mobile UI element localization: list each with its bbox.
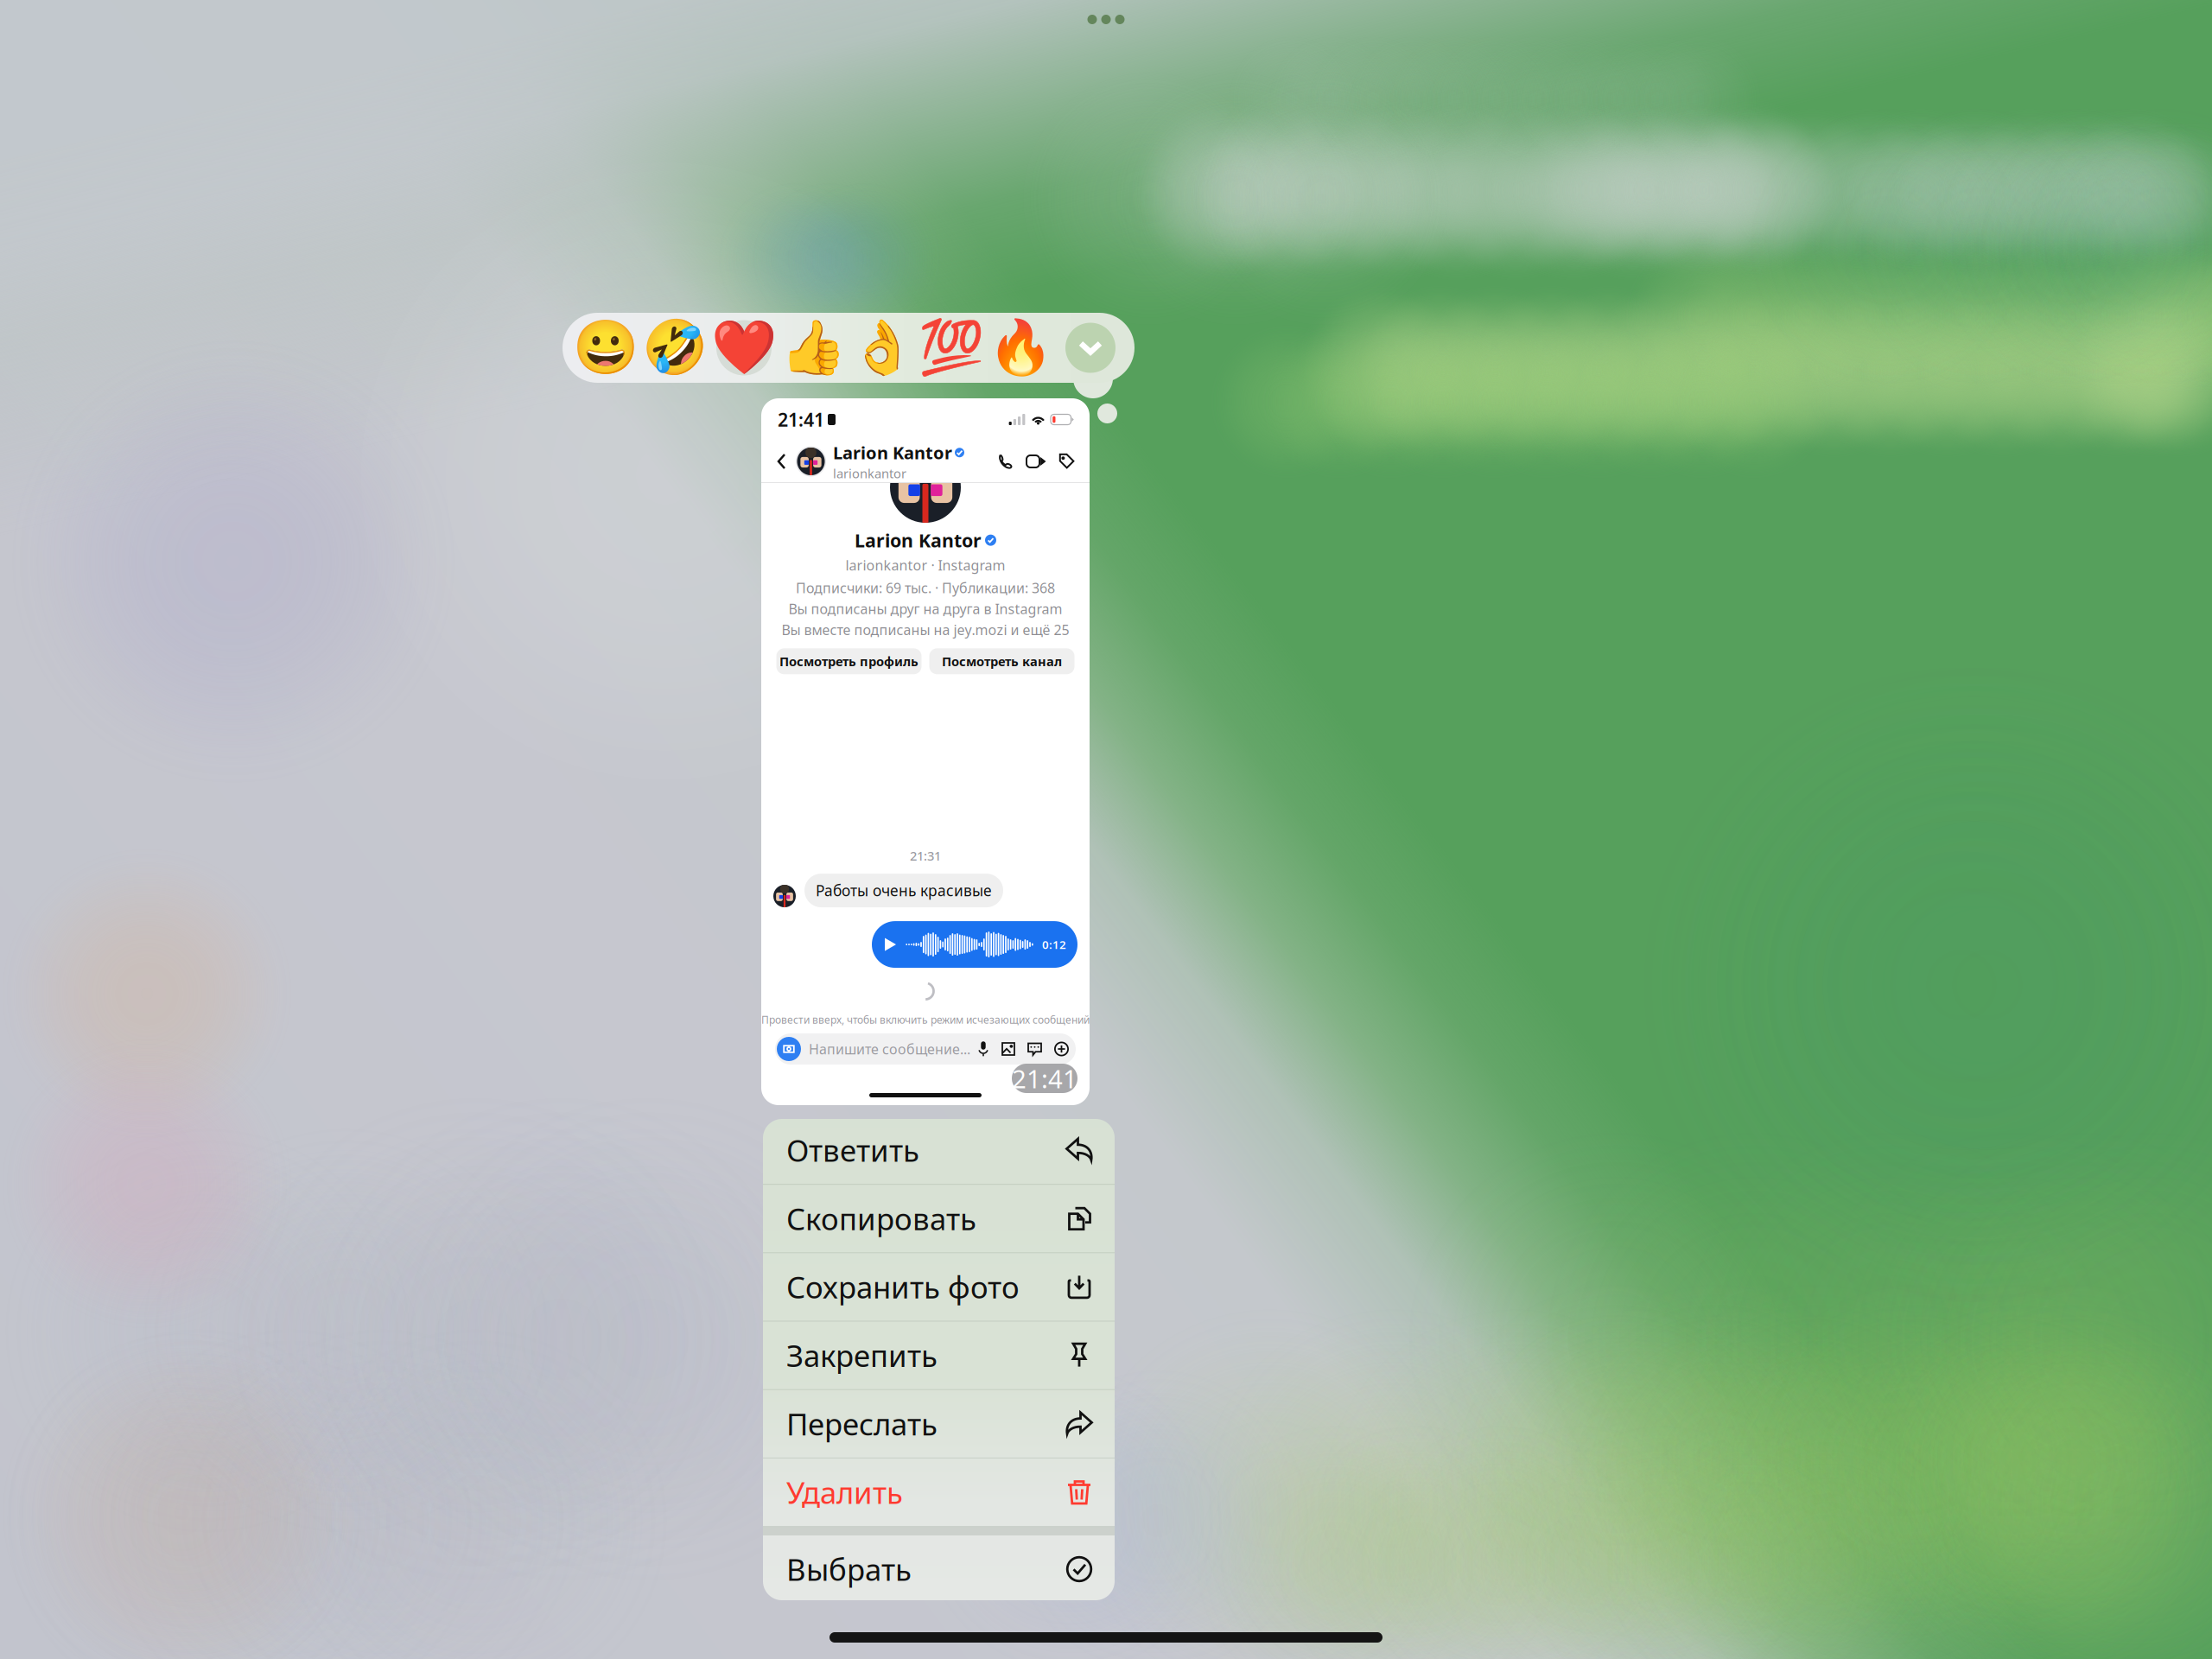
staticText: larionkantor	[833, 465, 906, 482]
button[interactable]: Переслать	[763, 1390, 1115, 1458]
staticText: Сохранить фото	[786, 1267, 1020, 1307]
button[interactable]: Tag	[1055, 449, 1079, 474]
staticText: Выбрать	[786, 1549, 912, 1589]
button[interactable]: Video call	[1023, 449, 1050, 474]
staticText: Закрепить	[786, 1335, 938, 1375]
staticText: Посмотреть канал	[942, 653, 1062, 670]
button[interactable]: 👌	[848, 313, 917, 383]
staticText: Посмотреть профиль	[779, 653, 918, 670]
staticText: Ответить	[786, 1130, 919, 1170]
staticText: Удалить	[786, 1472, 903, 1512]
staticText: Larion Kantor	[855, 528, 982, 552]
staticText: 0:12	[1042, 937, 1066, 952]
staticText: Работы очень красивые	[816, 880, 992, 900]
staticText: Вы подписаны друг на друга в Instagram	[788, 599, 1062, 618]
button[interactable]: Закрепить	[763, 1322, 1115, 1389]
staticText: Larion Kantor	[833, 441, 952, 464]
staticText: Подписчики: 69 тыс. · Публикации: 368	[796, 579, 1055, 597]
staticText: Скопировать	[786, 1199, 976, 1238]
staticText: 😀	[573, 318, 639, 378]
staticText: 21:31	[910, 847, 941, 864]
button[interactable]: 😀	[571, 313, 640, 383]
button[interactable]: 💯	[917, 313, 986, 383]
button[interactable]: More reactions	[1055, 313, 1126, 383]
button[interactable]: 🤣	[640, 313, 709, 383]
button[interactable]: ❤️	[709, 313, 779, 383]
button[interactable]: Скопировать	[763, 1185, 1115, 1252]
button[interactable]: Посмотреть канал	[929, 648, 1074, 674]
button[interactable]: 👍	[779, 313, 848, 383]
button[interactable]: Сохранить фото	[763, 1253, 1115, 1321]
staticText: 💯	[918, 318, 984, 378]
button[interactable]: Посмотреть профиль	[776, 648, 922, 674]
button[interactable]: Audio call	[994, 449, 1018, 474]
staticText: 🔥	[988, 318, 1053, 378]
button[interactable]: 🔥	[986, 313, 1055, 383]
staticText: 21:41	[1012, 1062, 1077, 1095]
staticText: 🤣	[642, 318, 708, 378]
staticText: Напишите сообщение...	[809, 1040, 970, 1058]
button[interactable]: Ответить	[763, 1116, 1115, 1184]
staticText: larionkantor · Instagram	[845, 556, 1005, 574]
staticText: Переслать	[786, 1404, 938, 1444]
staticText: ❤️	[711, 318, 777, 378]
button[interactable]: Back	[772, 448, 791, 475]
staticText: Провести вверх, чтобы включить режим исч…	[761, 1013, 1090, 1027]
staticText: 21:41	[778, 407, 824, 432]
button[interactable]: Удалить	[763, 1459, 1115, 1526]
staticText: 👌	[849, 318, 915, 378]
button[interactable]: Larion Kantor	[796, 441, 964, 482]
button[interactable]: Выбрать	[763, 1535, 1115, 1603]
staticText: 👍	[780, 318, 846, 378]
staticText: Вы вместе подписаны на jey.mozi и ещё 25	[782, 620, 1069, 639]
